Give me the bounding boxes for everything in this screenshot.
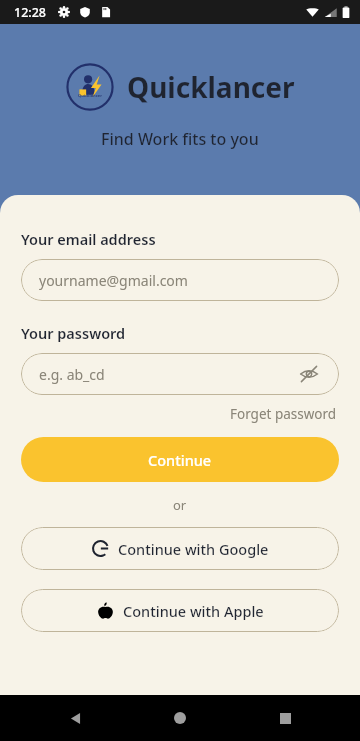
staticText: yourname@gmail.com (39, 271, 188, 290)
staticText: Continue (148, 450, 212, 470)
staticText: Continue with Apple (123, 601, 264, 621)
staticText: Continue with Google (118, 539, 269, 559)
staticText: 12:28 (14, 4, 47, 21)
staticText: or (173, 496, 187, 514)
button[interactable]: yourname@gmail.com (21, 259, 339, 301)
button[interactable]: Show password (297, 362, 321, 386)
button[interactable]: e.g. ab_cd (21, 353, 339, 395)
staticText: e.g. ab_cd (39, 365, 105, 384)
button[interactable]: Continue with Google (21, 527, 339, 570)
button[interactable]: Recent apps (268, 701, 302, 735)
staticText: Your password (21, 323, 126, 343)
button[interactable]: Continue (21, 437, 339, 482)
staticText: Your email address (21, 229, 156, 249)
button[interactable]: Continue with Apple (21, 589, 339, 632)
staticText: Quicklancer (127, 68, 295, 106)
staticText: Quicklancer (78, 93, 102, 98)
button[interactable]: Back (58, 701, 92, 735)
button[interactable]: Home (163, 701, 197, 735)
staticText: Find Work fits to you (101, 128, 259, 150)
button[interactable]: Forget password (228, 403, 339, 425)
staticText: Forget password (230, 405, 337, 423)
